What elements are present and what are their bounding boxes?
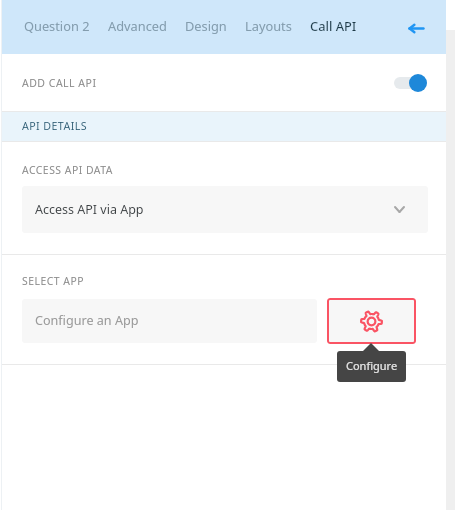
staticText: Design bbox=[185, 17, 227, 34]
staticText: API DETAILS bbox=[22, 119, 87, 134]
button[interactable]: Configure an App bbox=[22, 299, 317, 343]
button[interactable]: Configure bbox=[327, 298, 416, 344]
button[interactable]: Advanced bbox=[99, 0, 176, 54]
button[interactable]: Design bbox=[176, 0, 236, 54]
staticText: Question 2 bbox=[24, 17, 90, 34]
staticText: Advanced bbox=[108, 17, 167, 34]
button[interactable]: Enable Add Call API bbox=[394, 74, 427, 92]
button[interactable]: Call API bbox=[301, 0, 366, 54]
button[interactable]: Question 2 bbox=[15, 0, 99, 54]
button[interactable]: Layouts bbox=[236, 0, 301, 54]
staticText: Access API via App bbox=[35, 201, 144, 218]
staticText: Configure bbox=[346, 358, 398, 373]
button[interactable]: Access API via App bbox=[22, 186, 428, 233]
staticText: ACCESS API DATA bbox=[22, 163, 113, 177]
staticText: Layouts bbox=[245, 17, 292, 34]
staticText: Configure an App bbox=[35, 312, 139, 329]
staticText: ADD CALL API bbox=[22, 76, 97, 90]
staticText: SELECT APP bbox=[22, 274, 84, 288]
staticText: Call API bbox=[310, 17, 357, 34]
button[interactable]: Back bbox=[400, 10, 434, 44]
